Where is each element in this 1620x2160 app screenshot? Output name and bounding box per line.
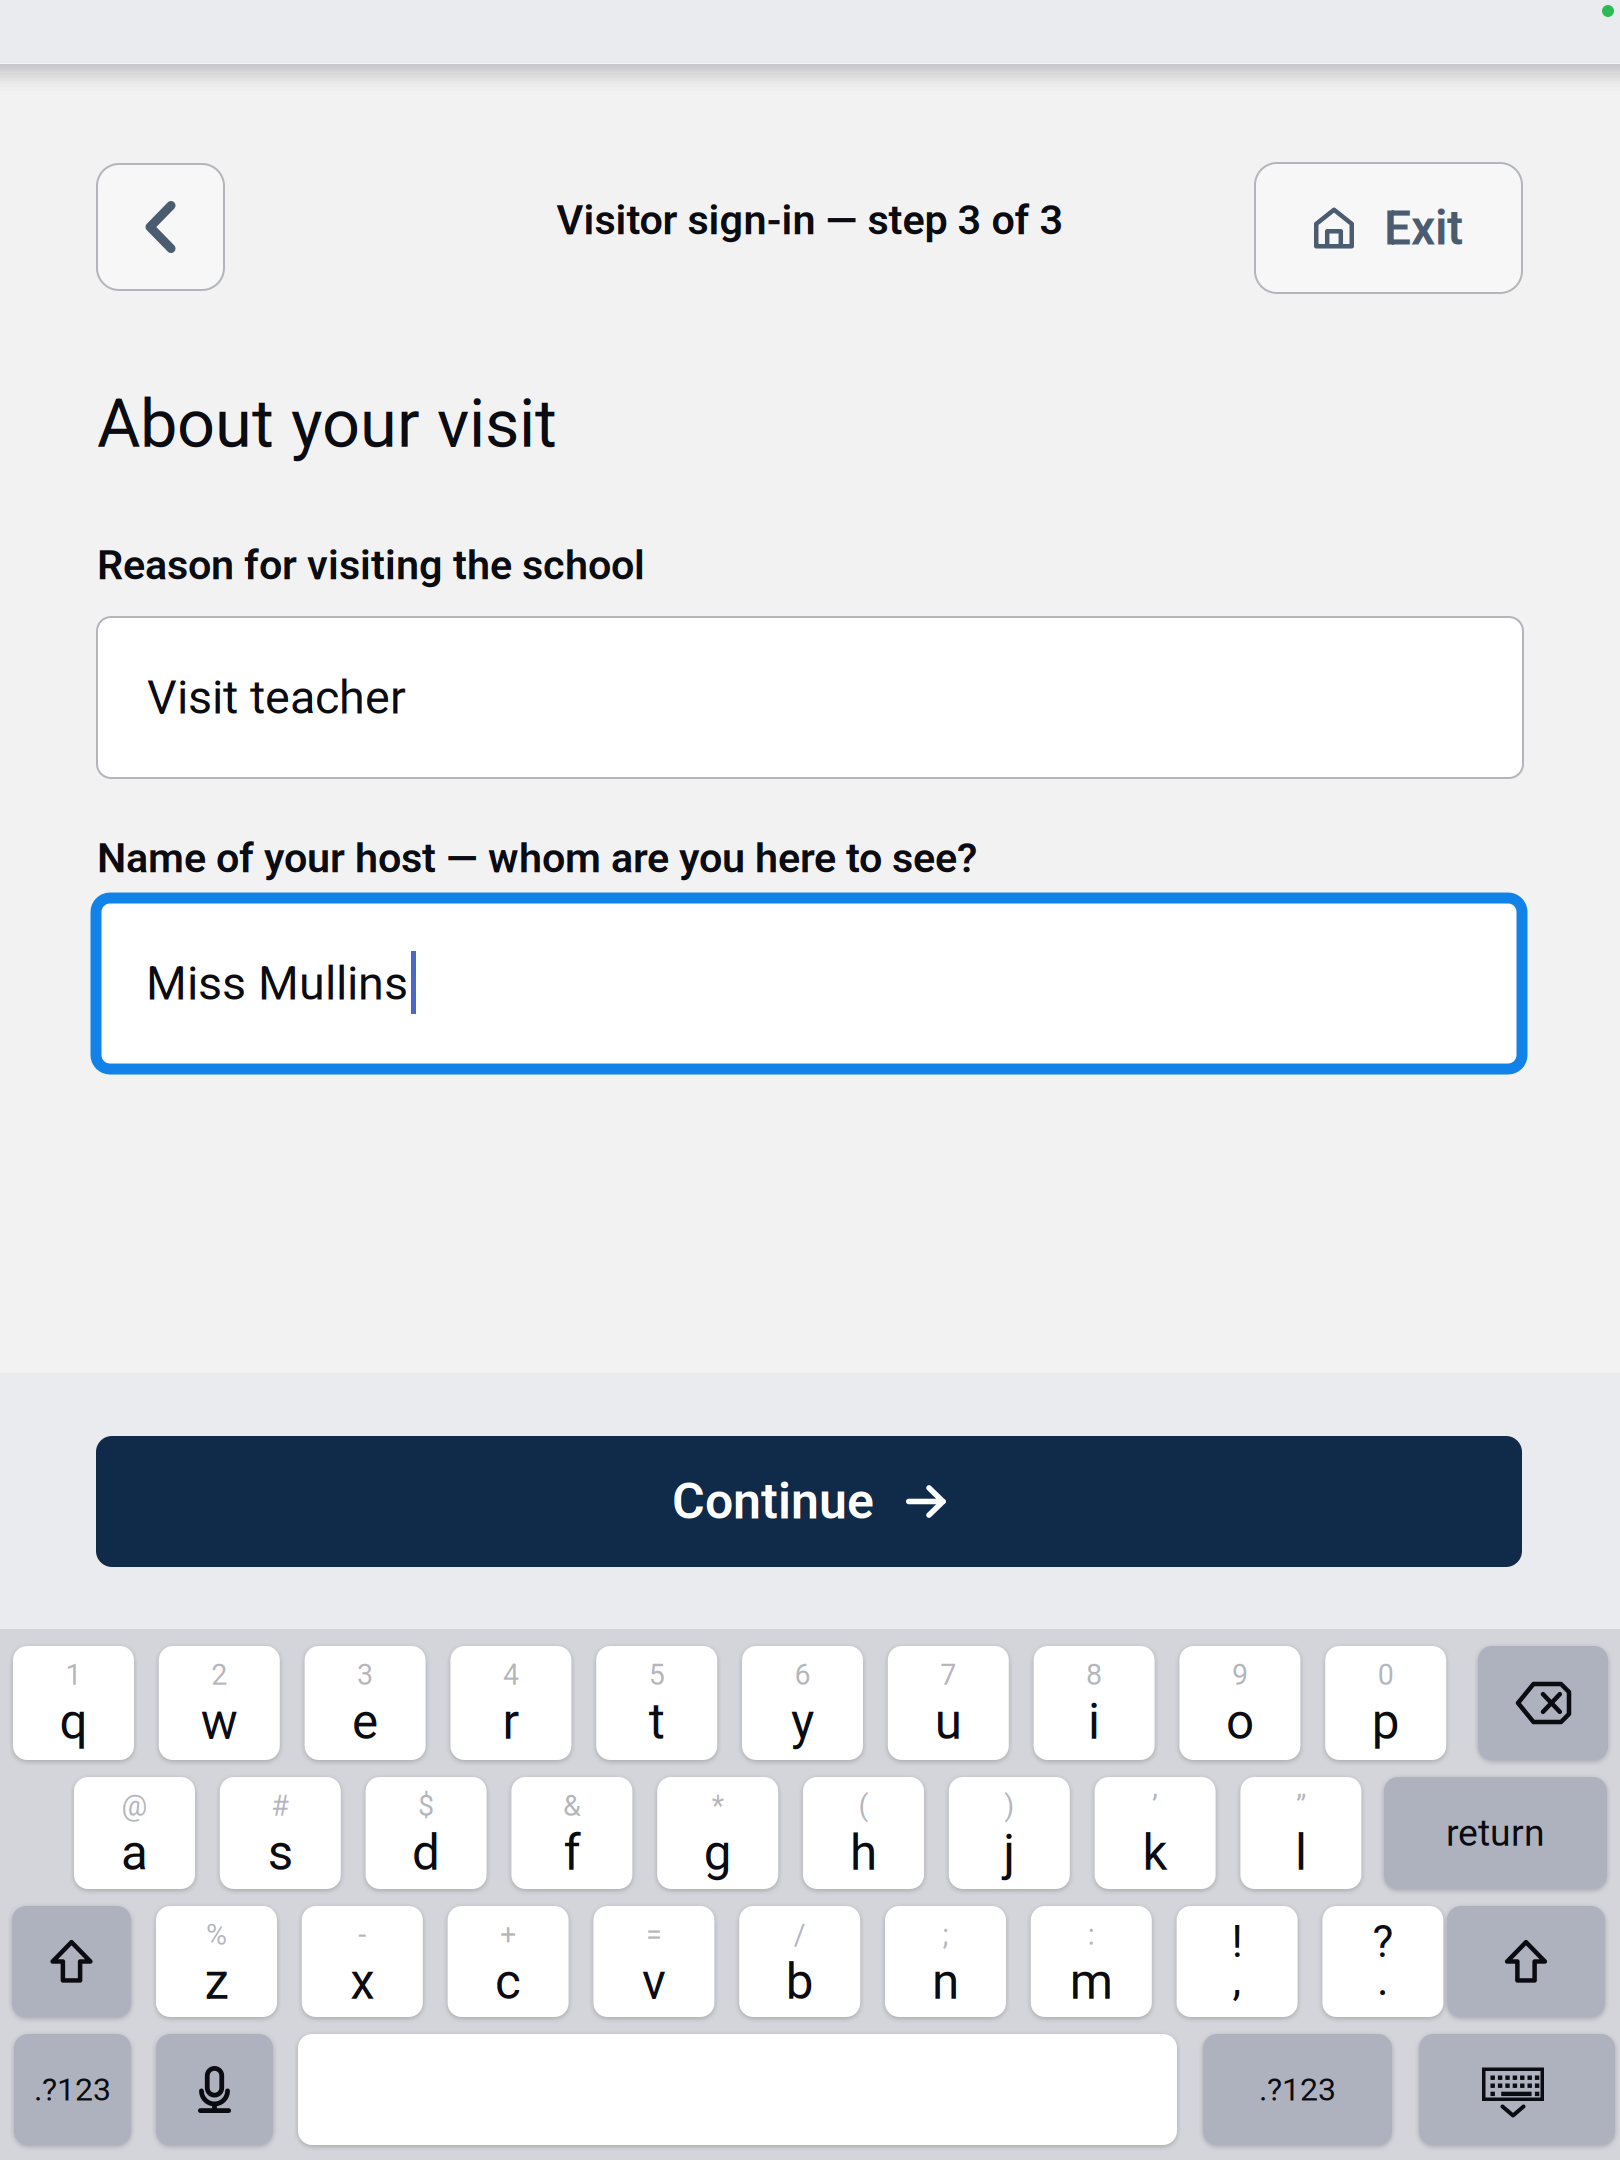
button[interactable]: ”: [1240, 1777, 1361, 1889]
staticText: Reason for visiting the school: [97, 541, 645, 589]
staticText: Continue: [672, 1472, 874, 1531]
button[interactable]: Continue: [96, 1436, 1522, 1567]
staticText: h: [850, 1824, 877, 1882]
button[interactable]: Back: [97, 164, 224, 290]
button[interactable]: Hide keyboard: [1419, 2034, 1615, 2145]
staticText: z: [204, 1953, 228, 2011]
button[interactable]: Numbers and symbols: [1203, 2034, 1392, 2145]
staticText: 0: [1378, 1658, 1394, 1692]
button[interactable]: 6: [742, 1646, 863, 1760]
staticText: 2: [211, 1658, 227, 1692]
staticText: l: [1295, 1824, 1307, 1882]
staticText: i: [1088, 1693, 1100, 1751]
staticText: Visit teacher: [147, 670, 406, 725]
button[interactable]: 1: [13, 1646, 134, 1760]
staticText: m: [1070, 1953, 1113, 2011]
staticText: ?: [1372, 1916, 1393, 1968]
button[interactable]: -: [302, 1906, 423, 2017]
staticText: .: [1377, 1954, 1389, 2006]
staticText: 8: [1086, 1658, 1102, 1692]
staticText: $: [418, 1789, 434, 1823]
button[interactable]: !: [1177, 1906, 1298, 2017]
staticText: !: [1232, 1916, 1243, 1968]
button[interactable]: 5: [596, 1646, 717, 1760]
button[interactable]: Delete: [1478, 1646, 1608, 1760]
button[interactable]: $: [366, 1777, 487, 1889]
staticText: n: [932, 1953, 959, 2011]
button[interactable]: ): [949, 1777, 1070, 1889]
staticText: +: [500, 1918, 516, 1952]
button[interactable]: (: [803, 1777, 924, 1889]
staticText: c: [495, 1953, 521, 2011]
staticText: b: [786, 1953, 814, 2011]
button[interactable]: ;: [885, 1906, 1006, 2017]
staticText: Miss Mullins: [146, 956, 408, 1011]
staticText: 1: [65, 1658, 81, 1692]
staticText: 5: [649, 1658, 665, 1692]
staticText: Name of your host — whom are you here to…: [97, 834, 977, 882]
staticText: @: [121, 1789, 147, 1823]
staticText: y: [791, 1693, 814, 1751]
button[interactable]: Numbers and symbols: [14, 2034, 131, 2145]
staticText: #: [271, 1789, 289, 1823]
button[interactable]: %: [156, 1906, 277, 2017]
staticText: k: [1143, 1824, 1168, 1882]
button[interactable]: Shift: [12, 1906, 131, 2017]
button[interactable]: #: [220, 1777, 341, 1889]
staticText: (: [858, 1789, 868, 1823]
button[interactable]: Shift: [1447, 1906, 1605, 2017]
staticText: f: [563, 1824, 580, 1882]
staticText: j: [1003, 1824, 1015, 1882]
staticText: ;: [942, 1918, 948, 1952]
staticText: p: [1372, 1693, 1400, 1751]
button[interactable]: =: [593, 1906, 714, 2017]
button[interactable]: @: [74, 1777, 195, 1889]
staticText: ”: [1296, 1789, 1306, 1823]
button[interactable]: 3: [305, 1646, 426, 1760]
staticText: u: [935, 1693, 962, 1751]
staticText: About your visit: [97, 385, 557, 463]
button[interactable]: 8: [1034, 1646, 1155, 1760]
staticText: 3: [357, 1658, 373, 1692]
button[interactable]: /: [739, 1906, 860, 2017]
staticText: w: [201, 1693, 238, 1751]
button[interactable]: 2: [159, 1646, 280, 1760]
staticText: 7: [940, 1658, 956, 1692]
staticText: 6: [794, 1658, 810, 1692]
button[interactable]: 7: [888, 1646, 1009, 1760]
staticText: o: [1226, 1693, 1254, 1751]
staticText: return: [1446, 1811, 1545, 1855]
staticText: Visitor sign-in — step 3 of 3: [556, 196, 1063, 244]
staticText: .?123: [1259, 2071, 1336, 2108]
staticText: =: [646, 1918, 662, 1952]
staticText: g: [704, 1824, 732, 1882]
button[interactable]: &: [511, 1777, 632, 1889]
staticText: a: [121, 1824, 148, 1882]
staticText: ): [1004, 1789, 1014, 1823]
staticText: :: [1088, 1918, 1095, 1952]
button[interactable]: ’: [1095, 1777, 1216, 1889]
button[interactable]: ?: [1322, 1906, 1443, 2017]
button[interactable]: Dictation: [156, 2034, 273, 2145]
button[interactable]: 9: [1179, 1646, 1300, 1760]
staticText: 4: [503, 1658, 519, 1692]
button[interactable]: +: [448, 1906, 569, 2017]
staticText: ’: [1152, 1789, 1158, 1823]
staticText: .?123: [34, 2071, 111, 2108]
staticText: %: [206, 1918, 227, 1952]
staticText: Exit: [1384, 200, 1463, 256]
staticText: ,: [1233, 1954, 1242, 2006]
button[interactable]: 0: [1325, 1646, 1446, 1760]
button[interactable]: :: [1031, 1906, 1152, 2017]
staticText: q: [59, 1693, 87, 1751]
staticText: 9: [1232, 1658, 1248, 1692]
button[interactable]: 4: [450, 1646, 571, 1760]
staticText: /: [794, 1918, 806, 1952]
staticText: -: [358, 1918, 366, 1952]
button[interactable]: Exit: [1255, 163, 1522, 293]
button[interactable]: *: [657, 1777, 778, 1889]
button[interactable]: Return: [1384, 1777, 1607, 1889]
staticText: e: [352, 1693, 378, 1751]
staticText: r: [502, 1693, 519, 1751]
